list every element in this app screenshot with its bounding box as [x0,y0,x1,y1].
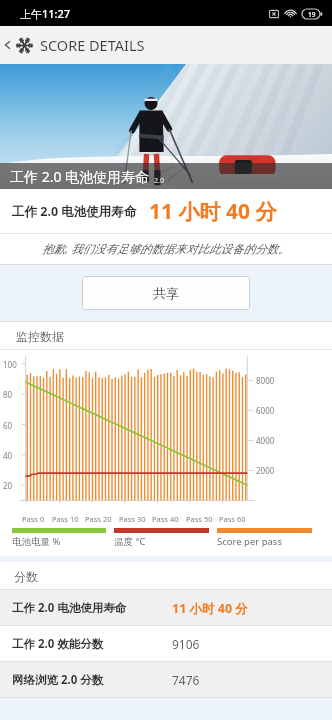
staticText: 网络浏览 2.0 分数 [12,672,104,688]
staticText: 7476 [172,672,200,688]
staticText: 温度 °C [114,535,146,548]
staticText: 监控数据 [16,329,64,344]
staticText: 分数 [14,569,38,584]
staticText: 工作 2.0 电池使用寿命 [12,203,137,220]
staticText: 2000 [256,465,275,476]
staticText: 6000 [256,405,275,416]
staticText: Pass 40 [152,514,179,524]
staticText: 11 小时 40 分 [172,600,248,617]
staticText: 4000 [256,435,275,446]
staticText: Pass 60 [219,514,246,524]
staticText: 工作 2.0 电池使用寿命 [12,600,127,616]
staticText: 100 [3,359,17,370]
staticText: 工作 2.0 电池使用寿命 [10,167,150,186]
staticText: 40 [3,450,13,461]
staticText: 2.0 [154,176,164,186]
staticText: 上午11:27 [20,6,71,21]
staticText: 共享 [153,285,179,301]
staticText: Pass 10 [52,514,79,524]
button[interactable]: 共享 [82,276,250,310]
button[interactable]: 网络浏览 2.0 分数 [0,662,332,698]
staticText: Pass 20 [85,514,112,524]
staticText: 11 小时 40 分 [149,197,277,226]
staticText: 80 [3,389,13,400]
staticText: 9106 [172,636,200,652]
staticText: 8000 [256,375,275,386]
staticText: Score per pass [217,535,282,548]
button[interactable]: 工作 2.0 效能分数 [0,626,332,662]
staticText: 19 [308,10,316,19]
staticText: SCORE DETAILS [40,35,145,55]
button[interactable]: Back [0,26,16,64]
button[interactable]: 工作 2.0 电池使用寿命 [0,590,332,626]
staticText: 抱歉, 我们没有足够的数据来对比此设备的分数。 [42,241,290,257]
staticText: Pass 0 [22,514,45,524]
staticText: Pass 30 [119,514,146,524]
staticText: 工作 2.0 效能分数 [12,636,104,652]
staticText: 电池电量 % [12,535,61,548]
staticText: 20 [3,480,13,491]
staticText: 60 [3,420,13,431]
staticText: Pass 50 [186,514,213,524]
